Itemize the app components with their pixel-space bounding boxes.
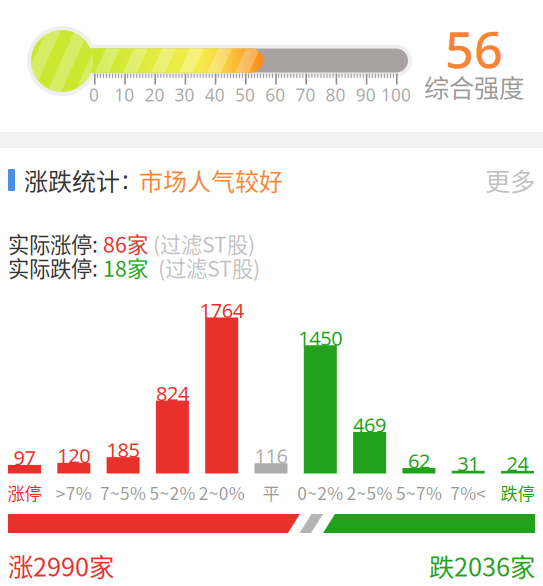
- staticText: 平: [262, 480, 279, 505]
- staticText: 116: [254, 442, 287, 469]
- staticText: 120: [57, 442, 90, 469]
- staticText: 1450: [298, 324, 342, 351]
- staticText: 56: [445, 14, 503, 83]
- staticText: 185: [107, 436, 140, 463]
- staticText: 跌2036家: [429, 547, 535, 584]
- staticText: 更多: [485, 162, 535, 198]
- staticText: 涨2990家: [8, 547, 114, 584]
- staticText: 80: [326, 83, 346, 107]
- button[interactable]: 更多: [485, 162, 535, 198]
- staticText: 0: [89, 83, 99, 107]
- staticText: 824: [156, 380, 189, 407]
- staticText: 62: [408, 447, 430, 474]
- staticText: >7%: [56, 480, 92, 505]
- staticText: 涨跌统计: [24, 163, 120, 197]
- staticText: 0~2%: [297, 480, 343, 505]
- staticText: 86家: [98, 228, 148, 259]
- staticText: 40: [205, 83, 225, 107]
- staticText: 跌停: [500, 480, 534, 505]
- staticText: 市场人气较好: [139, 163, 283, 197]
- staticText: 60: [265, 83, 285, 107]
- staticText: 2~5%: [347, 480, 393, 505]
- staticText: 5~2%: [149, 480, 195, 505]
- staticText: 7~5%: [100, 480, 146, 505]
- staticText: 31: [457, 450, 479, 477]
- staticText: 5~7%: [396, 480, 442, 505]
- staticText: 1764: [200, 296, 244, 324]
- staticText: 20: [144, 83, 164, 107]
- staticText: 涨停: [7, 480, 41, 505]
- staticText: 50: [235, 83, 255, 107]
- staticText: 30: [175, 83, 195, 107]
- staticText: 7%<: [450, 480, 486, 505]
- staticText: (过滤ST股): [148, 228, 255, 259]
- staticText: 实际涨停:: [8, 228, 98, 259]
- staticText: 100: [381, 83, 411, 107]
- staticText: 70: [295, 83, 315, 107]
- staticText: 实际跌停:: [8, 252, 98, 283]
- staticText: 18家: [98, 252, 148, 283]
- staticText: 469: [353, 411, 386, 438]
- staticText: (过滤ST股): [148, 252, 260, 283]
- staticText: :: [122, 162, 129, 197]
- staticText: 90: [356, 83, 376, 107]
- staticText: 2~0%: [199, 480, 245, 505]
- staticText: 97: [13, 444, 35, 471]
- staticText: 24: [506, 450, 528, 477]
- staticText: 10: [114, 83, 134, 107]
- staticText: 综合强度: [424, 68, 524, 105]
